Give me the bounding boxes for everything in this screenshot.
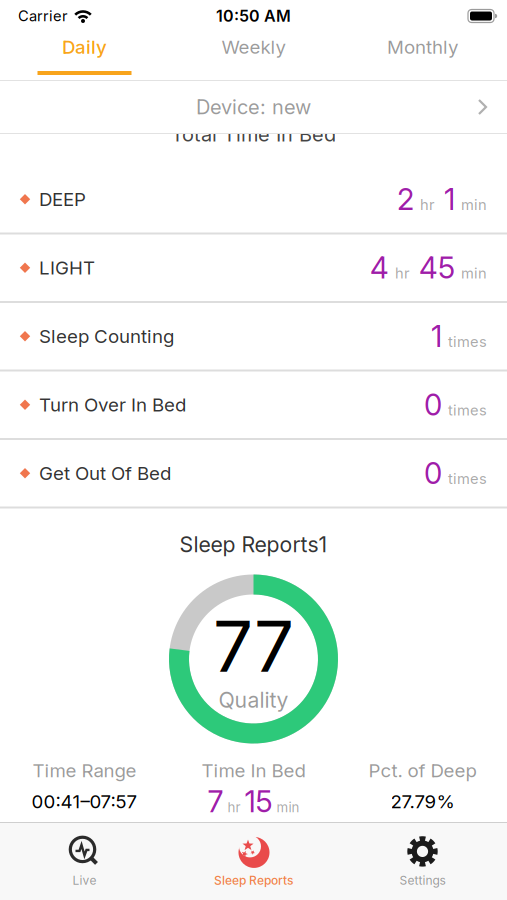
staticText: Sleep Reports1 xyxy=(179,532,327,557)
staticText: 77 xyxy=(213,604,294,688)
button[interactable]: Settings xyxy=(338,835,507,888)
staticText: min xyxy=(461,264,487,282)
staticText: min xyxy=(461,196,487,213)
staticText: 1 xyxy=(431,319,442,353)
staticText: times xyxy=(448,470,487,487)
staticText: Get Out Of Bed xyxy=(39,462,171,484)
staticText: 1 xyxy=(444,182,455,216)
button[interactable]: Daily xyxy=(0,32,169,80)
staticText: hr xyxy=(395,264,410,282)
staticText: 10:50 AM xyxy=(216,7,291,25)
button[interactable]: Sleep Reports xyxy=(169,835,338,888)
staticText: Monthly xyxy=(387,36,458,58)
staticText: Quality xyxy=(218,687,288,713)
staticText: hr xyxy=(227,799,240,815)
staticText: Sleep Reports xyxy=(214,873,293,888)
button[interactable]: Device: new xyxy=(0,81,507,133)
staticText: 2 xyxy=(397,182,414,216)
staticText: Time In Bed xyxy=(201,759,305,781)
staticText: 45 xyxy=(419,250,455,285)
staticText: Turn Over In Bed xyxy=(39,394,186,416)
staticText: Live xyxy=(72,873,96,888)
button[interactable]: Weekly xyxy=(169,32,338,80)
staticText: hr xyxy=(420,196,435,213)
staticText: 27.79% xyxy=(390,790,454,812)
staticText: Pct. of Deep xyxy=(368,759,476,781)
staticText: Daily xyxy=(62,36,107,58)
staticText: LIGHT xyxy=(39,257,95,279)
staticText: 4 xyxy=(370,250,389,285)
staticText: Carrier xyxy=(18,7,68,25)
staticText: 0 xyxy=(424,456,442,490)
staticText: times xyxy=(448,333,487,350)
staticText: Total Time In Bed xyxy=(171,122,336,146)
staticText: Time Range xyxy=(32,759,136,781)
staticText: 0 xyxy=(424,387,442,422)
button[interactable]: Live xyxy=(0,835,169,888)
staticText: DEEP xyxy=(39,188,86,210)
staticText: Settings xyxy=(399,873,445,888)
staticText: Sleep Counting xyxy=(39,325,174,347)
staticText: 15 xyxy=(244,784,272,819)
staticText: Weekly xyxy=(221,36,285,58)
button[interactable]: Monthly xyxy=(338,32,507,80)
staticText: 00:41–07:57 xyxy=(31,790,137,812)
staticText: 7 xyxy=(207,784,223,819)
staticText: times xyxy=(448,401,487,419)
staticText: Device: new xyxy=(196,95,311,119)
staticText: min xyxy=(276,799,299,815)
